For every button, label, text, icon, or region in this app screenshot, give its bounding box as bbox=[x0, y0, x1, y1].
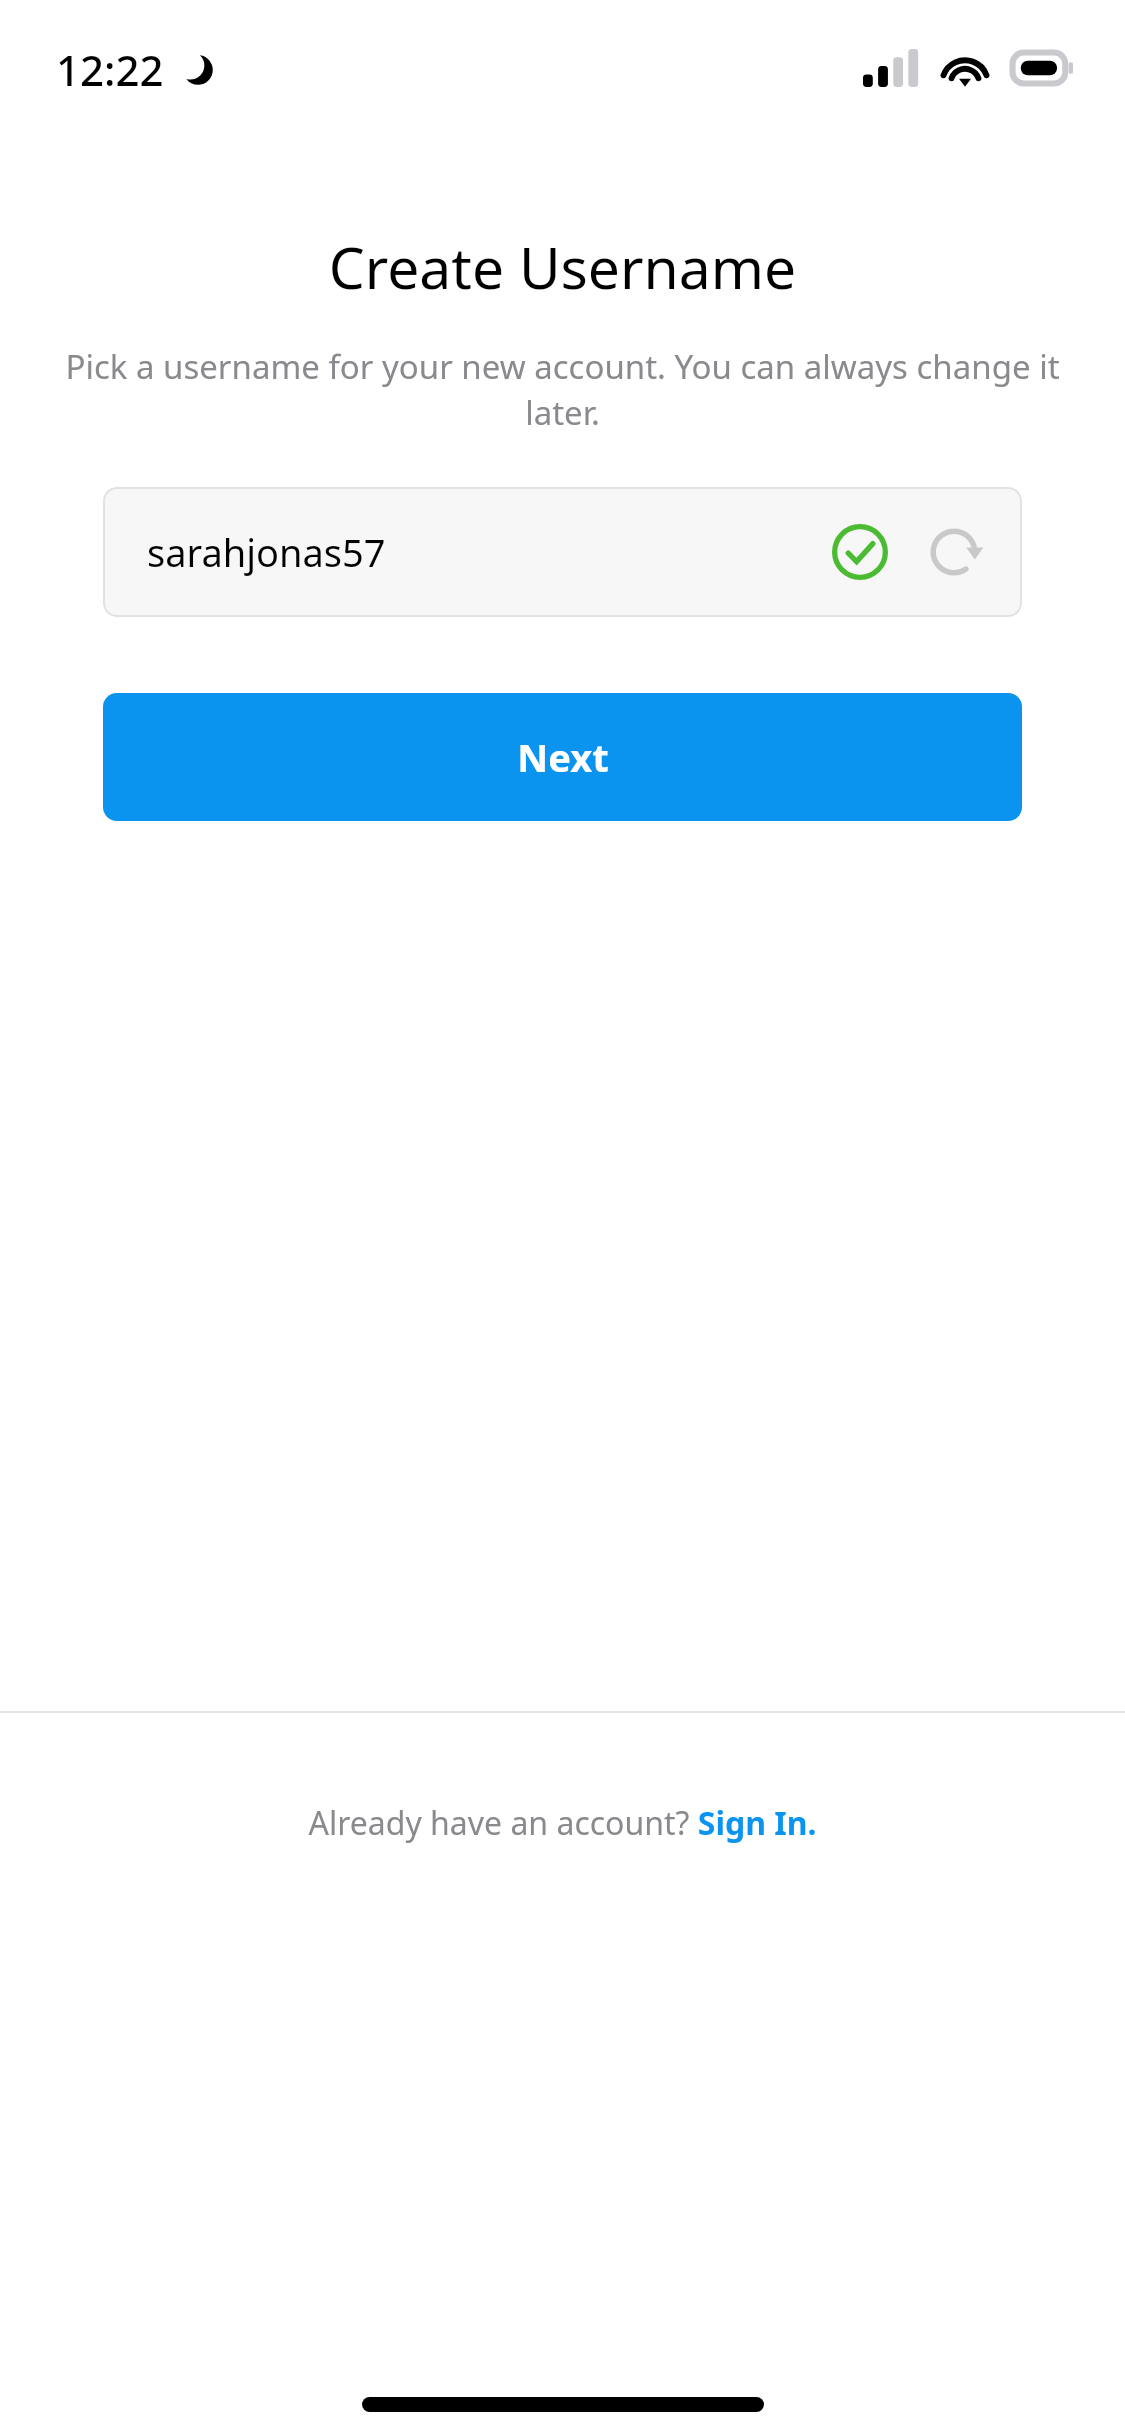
button[interactable]: Already have an account? Sign In. bbox=[0, 1801, 1125, 1845]
staticText: sarahjonas57 bbox=[147, 526, 386, 578]
button[interactable]: Next bbox=[103, 693, 1022, 821]
button[interactable]: Generate new username bbox=[916, 514, 992, 590]
staticText: Create Username bbox=[0, 228, 1125, 306]
staticText: Pick a username for your new account. Yo… bbox=[62, 344, 1063, 435]
staticText: 12:22 bbox=[56, 41, 164, 98]
staticText: Next bbox=[517, 731, 609, 783]
button[interactable]: Username available bbox=[822, 514, 898, 590]
button[interactable]: sarahjonas57 bbox=[103, 487, 1022, 617]
staticText: Already have an account? Sign In. bbox=[308, 1801, 817, 1845]
